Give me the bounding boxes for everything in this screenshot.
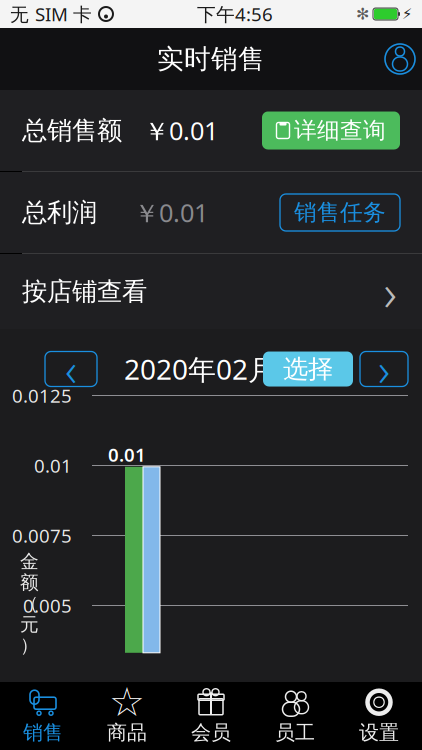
button[interactable]: 详细查询	[262, 111, 400, 149]
button[interactable]: 账户	[378, 37, 422, 81]
staticText: 销售	[23, 720, 63, 745]
button[interactable]: 上一天	[45, 351, 97, 386]
button[interactable]: 销售	[1, 682, 85, 750]
staticText: 详细查询	[294, 117, 386, 144]
staticText: 无 SIM 卡	[10, 2, 92, 26]
button[interactable]: 会员	[169, 682, 253, 750]
staticText: 下午4:56	[197, 2, 273, 26]
staticText: 会员	[191, 720, 231, 745]
staticText: 商品	[107, 720, 147, 745]
staticText: ✻	[356, 5, 369, 23]
staticText: 选择	[283, 353, 333, 384]
staticText: 0.01	[34, 453, 72, 478]
staticText: 金	[20, 550, 39, 573]
staticText: 额	[20, 571, 39, 594]
button[interactable]: ☆	[85, 682, 169, 750]
staticText: ￥0.01	[144, 114, 218, 147]
button[interactable]: 员工	[253, 682, 337, 750]
button[interactable]: 销售任务	[280, 194, 400, 231]
staticText: 2020年02月0	[124, 350, 292, 388]
staticText: 总销售额	[22, 115, 122, 146]
staticText: 销售任务	[294, 199, 386, 226]
staticText: （	[20, 592, 39, 615]
staticText: ￥0.01	[134, 196, 208, 229]
staticText: 实时销售	[157, 43, 265, 75]
button[interactable]: 下一天	[360, 351, 408, 386]
staticText: ☆	[109, 679, 145, 725]
staticText: ›	[378, 339, 390, 399]
staticText: ›	[383, 258, 396, 325]
staticText: 0.0125	[12, 383, 72, 408]
button[interactable]: 设置	[337, 682, 421, 750]
staticText: 0.0075	[12, 523, 72, 548]
staticText: 0.01	[108, 442, 146, 467]
button[interactable]: 按店铺查看	[0, 254, 422, 329]
staticText: 元	[20, 613, 39, 636]
staticText: 设置	[359, 720, 399, 745]
staticText: 按店铺查看	[22, 276, 147, 307]
staticText: 员工	[275, 720, 315, 745]
button[interactable]: 选择	[263, 351, 353, 386]
staticText: ‹	[65, 339, 77, 399]
staticText: 0.005	[23, 593, 72, 618]
staticText: ⚡︎	[402, 6, 412, 22]
staticText: 总利润	[22, 197, 97, 228]
staticText: ）	[20, 634, 39, 657]
